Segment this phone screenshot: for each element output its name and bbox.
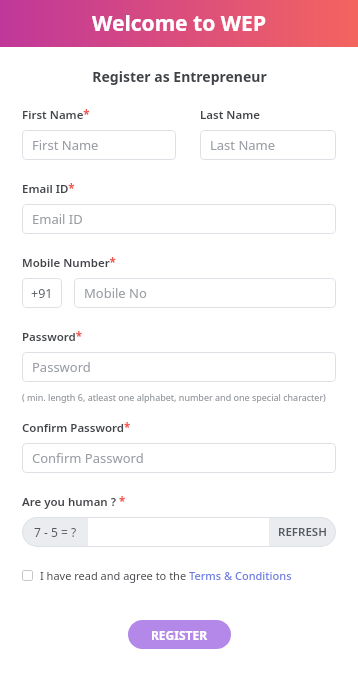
staticText: Register as Entrepreneur (92, 67, 267, 86)
button[interactable]: Email ID (22, 204, 336, 234)
staticText: Last Name (200, 107, 260, 123)
staticText: Confirm Password (32, 449, 144, 467)
staticText: ( min. length 6, atleast one alphabet, n… (22, 391, 326, 403)
button[interactable]: Password (22, 352, 336, 382)
button[interactable] (88, 517, 269, 547)
staticText: Mobile No (84, 284, 147, 302)
button[interactable]: Confirm Password (22, 443, 336, 473)
button[interactable]: REFRESH (269, 517, 336, 547)
button[interactable]: Last Name (200, 130, 336, 160)
staticText: Email ID (32, 210, 83, 228)
button[interactable]: REGISTER (128, 620, 231, 649)
button[interactable]: First Name (22, 130, 176, 160)
button[interactable]: +91 (22, 278, 62, 308)
staticText: First Name (32, 136, 99, 154)
staticText: 7 - 5 = ? (34, 524, 77, 540)
staticText: Confirm Password* (22, 420, 131, 436)
staticText: Email ID* (22, 181, 75, 197)
other: Agree to terms checkbox (22, 570, 33, 581)
staticText: Password* (22, 329, 82, 345)
staticText: Welcome to WEP (92, 9, 266, 38)
button[interactable]: Mobile No (74, 278, 336, 308)
staticText: +91 (31, 285, 53, 302)
staticText: REGISTER (151, 627, 208, 643)
staticText: Are you human ? * (22, 494, 126, 510)
staticText: Password (32, 358, 91, 376)
staticText: First Name* (22, 107, 90, 123)
staticText: I have read and agree to the Terms & Con… (40, 568, 292, 583)
staticText: REFRESH (278, 524, 327, 540)
staticText: Last Name (210, 136, 276, 154)
button[interactable]: Agree to terms checkbox (22, 568, 292, 583)
staticText: Mobile Number* (22, 255, 116, 271)
